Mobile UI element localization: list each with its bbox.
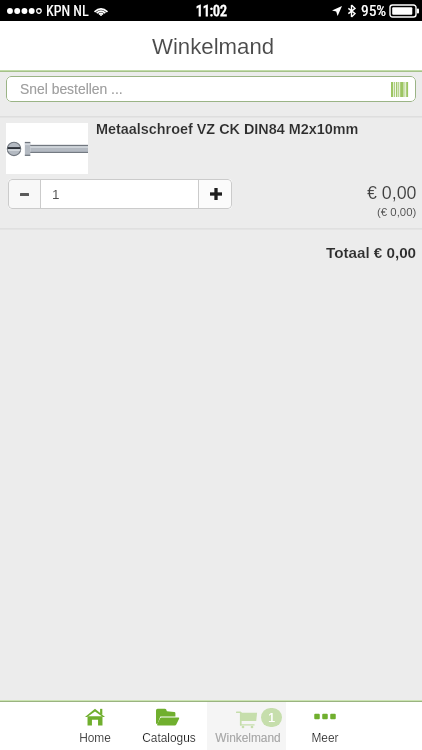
staticText: (€ 0,00): [377, 206, 417, 219]
staticText: Winkelmand: [152, 34, 275, 59]
staticText: Metaalschroef VZ CK DIN84 M2x10mm: [96, 121, 359, 137]
staticText: 1: [268, 710, 276, 725]
button[interactable]: Meer: [286, 702, 364, 750]
staticText: Meer: [311, 731, 339, 744]
button[interactable]: Snel bestellen ...: [6, 76, 416, 102]
staticText: 1: [52, 187, 60, 202]
button[interactable]: Increase quantity: [199, 179, 232, 209]
staticText: 95%: [361, 2, 387, 20]
button[interactable]: Decrease quantity: [8, 179, 40, 209]
staticText: KPN NL: [46, 3, 89, 19]
staticText: Snel bestellen ...: [20, 81, 391, 97]
button[interactable]: Home: [56, 702, 134, 750]
staticText: Winkelmand: [215, 731, 281, 744]
button[interactable]: Scan barcode: [391, 82, 409, 97]
button[interactable]: Catalogus: [130, 702, 208, 750]
staticText: Home: [79, 731, 111, 744]
staticText: 11:02: [196, 3, 227, 19]
staticText: € 0,00: [367, 183, 417, 203]
button[interactable]: 1: [207, 702, 289, 750]
staticText: Catalogus: [142, 731, 196, 744]
staticText: Totaal € 0,00: [326, 244, 417, 261]
